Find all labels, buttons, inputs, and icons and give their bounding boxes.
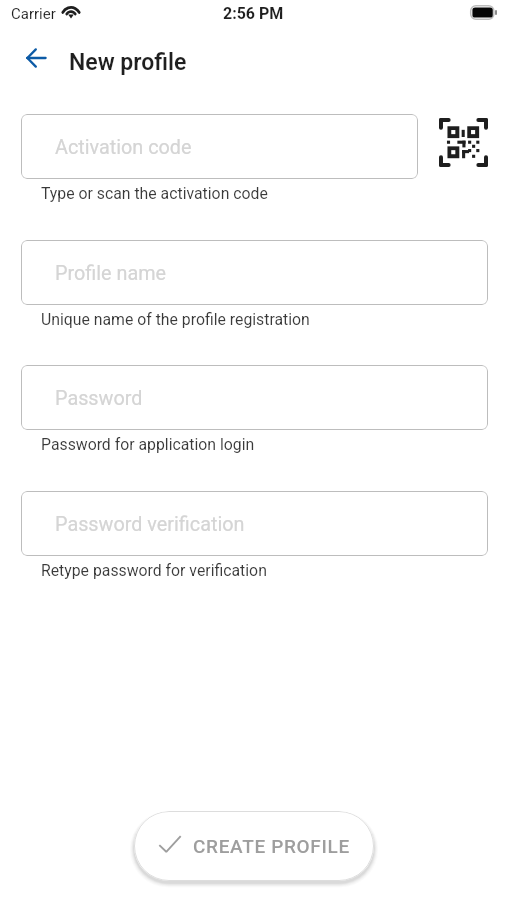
button[interactable]: Password verification — [21, 491, 488, 556]
staticText: Password for application login — [41, 435, 255, 454]
staticText: New profile — [69, 49, 187, 76]
staticText: 2:56 PM — [223, 4, 284, 23]
staticText: Unique name of the profile registration — [41, 310, 310, 329]
button[interactable]: Scan QR code — [429, 107, 497, 175]
button[interactable]: Profile name — [21, 240, 488, 305]
button[interactable]: Back — [20, 42, 52, 74]
staticText: Activation code — [55, 136, 192, 159]
button[interactable]: Password — [21, 365, 488, 430]
staticText: Retype password for verification — [41, 561, 267, 580]
staticText: Carrier — [11, 5, 56, 23]
staticText: Profile name — [55, 262, 167, 285]
button[interactable]: Activation code — [21, 114, 418, 179]
staticText: Type or scan the activation code — [41, 184, 268, 203]
button[interactable]: CREATE PROFILE — [134, 811, 374, 881]
staticText: Password verification — [55, 513, 245, 536]
staticText: CREATE PROFILE — [193, 835, 350, 857]
staticText: Password — [55, 387, 143, 410]
